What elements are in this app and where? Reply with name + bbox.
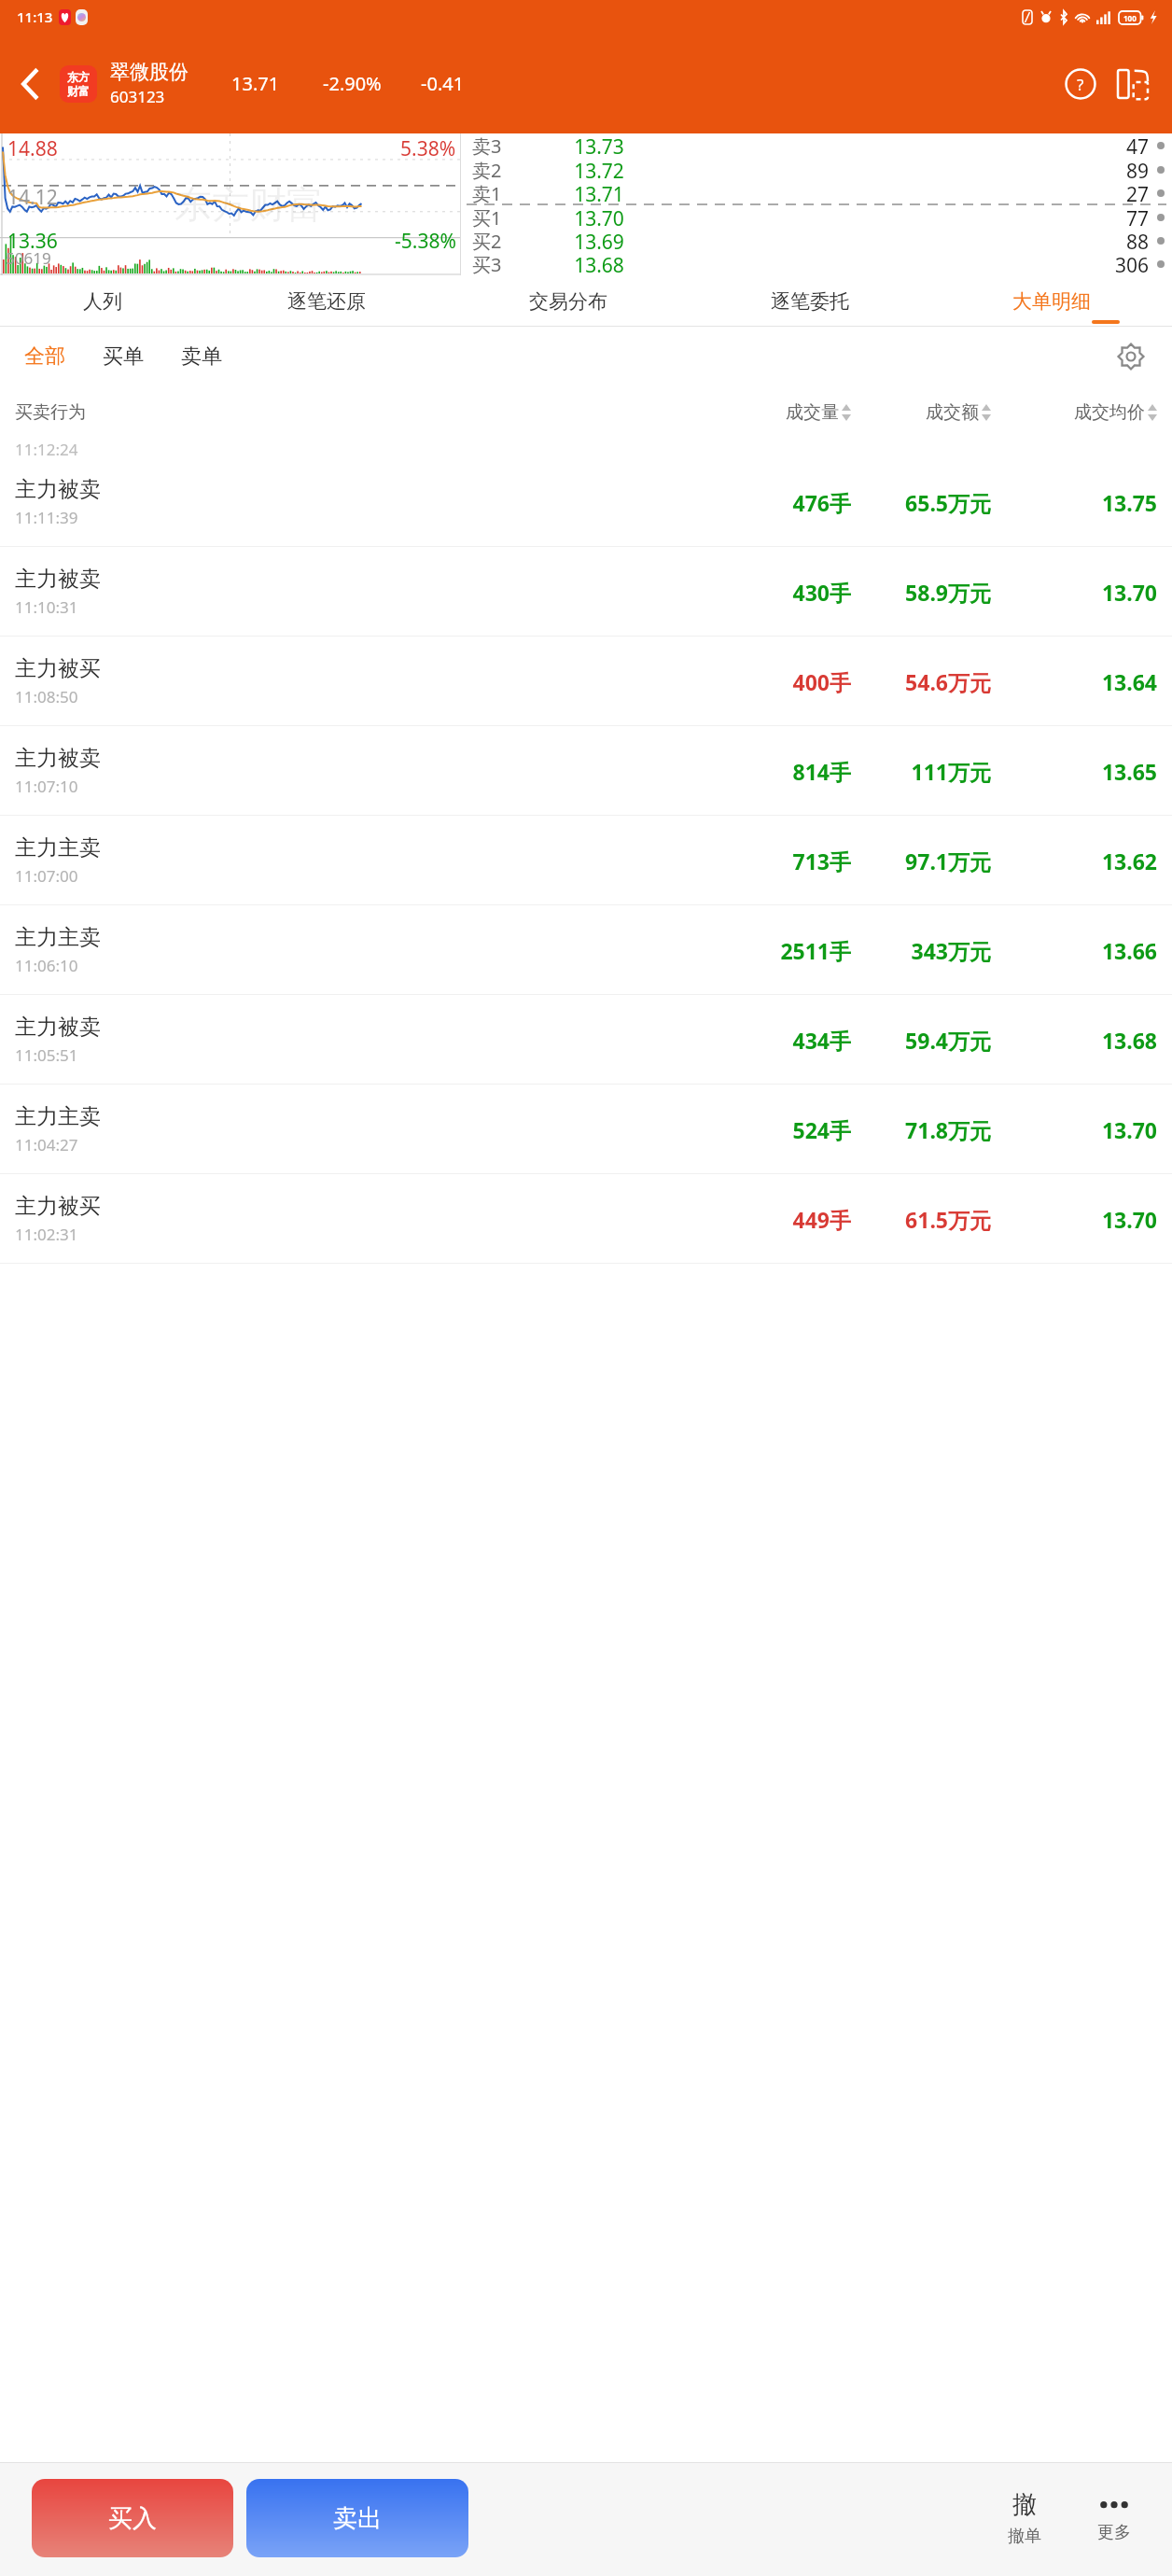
button[interactable]: 卖3 <box>461 133 1172 158</box>
staticText: 476手 <box>705 488 851 517</box>
staticText: 13.62 <box>991 847 1157 875</box>
staticText: 430手 <box>705 578 851 607</box>
button[interactable]: 交易分布 <box>447 275 689 327</box>
staticText: 卖单 <box>181 343 222 370</box>
staticText: 主力被卖 <box>15 566 101 593</box>
staticText: 814手 <box>705 757 851 786</box>
staticText: 13.64 <box>991 667 1157 696</box>
button[interactable]: 买1 <box>461 205 1172 229</box>
button[interactable]: 成交量 <box>705 401 851 424</box>
staticText: 13.36 <box>7 228 58 255</box>
staticText: 343万元 <box>851 936 991 965</box>
button[interactable]: 全部 <box>24 343 65 370</box>
staticText: 东方财富 <box>174 181 324 228</box>
staticText: 97.1万元 <box>851 847 991 875</box>
button[interactable]: 主力被买 <box>0 637 1172 726</box>
staticText: 11:05:51 <box>15 1044 78 1066</box>
button[interactable]: 卖1 <box>461 181 1172 204</box>
button[interactable]: 买2 <box>461 229 1172 252</box>
staticText: 13.70 <box>991 1205 1157 1234</box>
button[interactable]: Landscape <box>1107 58 1159 110</box>
button[interactable]: 买入 <box>32 2479 233 2557</box>
staticText: 5.38% <box>400 135 456 162</box>
button[interactable]: 买3 <box>461 252 1172 275</box>
staticText: 71.8万元 <box>851 1115 991 1144</box>
staticText: 11:07:10 <box>15 776 78 797</box>
staticText: 主力被卖 <box>15 745 101 772</box>
staticText: 13.68 <box>543 252 655 275</box>
button[interactable]: 成交额 <box>851 401 991 424</box>
staticText: 111万元 <box>851 757 991 786</box>
button[interactable]: 逐笔委托 <box>689 275 930 327</box>
staticText: 13.66 <box>991 936 1157 965</box>
staticText: 翠微股份 <box>110 60 188 84</box>
button[interactable]: 主力被卖 <box>0 995 1172 1085</box>
staticText: 11:04:27 <box>15 1134 78 1155</box>
staticText: 东方 <box>67 70 90 84</box>
staticText: 77 <box>1126 205 1150 229</box>
staticText: 主力主卖 <box>15 924 101 951</box>
button[interactable]: Help <box>1054 58 1107 110</box>
button[interactable]: 主力主卖 <box>0 905 1172 995</box>
staticText: 2511手 <box>705 936 851 965</box>
staticText: 13.69 <box>543 229 655 252</box>
button[interactable]: 主力被卖 <box>0 726 1172 816</box>
staticText: 11:13 <box>17 7 53 26</box>
button[interactable]: 主力主卖 <box>0 816 1172 905</box>
staticText: 撤单 <box>1008 2526 1041 2547</box>
staticText: 逐笔还原 <box>287 289 366 314</box>
staticText: 财富 <box>67 84 90 98</box>
button[interactable]: 逐笔还原 <box>205 275 447 327</box>
staticText: 主力主卖 <box>15 834 101 861</box>
staticText: 13.70 <box>991 578 1157 607</box>
staticText: 买3 <box>472 252 543 275</box>
staticText: 306 <box>1115 252 1150 275</box>
staticText: 713手 <box>705 847 851 875</box>
button[interactable]: 卖单 <box>181 343 222 370</box>
staticText: 全部 <box>24 343 65 370</box>
staticText: 11:11:39 <box>15 507 78 528</box>
staticText: 59.4万元 <box>851 1026 991 1055</box>
button[interactable]: 大单明细 <box>930 275 1172 327</box>
staticText: 11:07:00 <box>15 865 78 887</box>
staticText: 买1 <box>472 205 543 229</box>
staticText: 100 <box>1123 13 1137 23</box>
staticText: 14.12 <box>7 184 58 211</box>
staticText: 603123 <box>110 86 165 107</box>
staticText: 买单 <box>103 343 144 370</box>
button[interactable]: 主力被卖 <box>0 457 1172 547</box>
button[interactable]: 主力被卖 <box>0 547 1172 637</box>
staticText: 成交均价 <box>1074 401 1145 424</box>
button[interactable]: 撤 <box>980 2479 1069 2557</box>
button[interactable]: Settings <box>1109 334 1153 379</box>
button[interactable]: 主力被买 <box>0 1174 1172 1264</box>
staticText: 卖3 <box>472 133 543 158</box>
staticText: 卖出 <box>333 2503 382 2534</box>
button[interactable]: 主力主卖 <box>0 1085 1172 1174</box>
staticText: 88 <box>1126 229 1150 252</box>
staticText: 13.71 <box>543 181 655 204</box>
staticText: 主力被买 <box>15 655 101 682</box>
button[interactable]: 卖出 <box>246 2479 468 2557</box>
staticText: 61.5万元 <box>851 1205 991 1234</box>
staticText: -2.90% <box>323 71 382 96</box>
staticText: 13.75 <box>991 488 1157 517</box>
button[interactable]: 买单 <box>103 343 144 370</box>
button[interactable]: 成交均价 <box>991 401 1157 424</box>
staticText: 65.5万元 <box>851 488 991 517</box>
staticText: 成交额 <box>926 401 979 424</box>
staticText: 449手 <box>705 1205 851 1234</box>
staticText: 58.9万元 <box>851 578 991 607</box>
staticText: 11:02:31 <box>15 1224 78 1245</box>
button[interactable]: 更多 <box>1069 2479 1159 2557</box>
button[interactable]: 卖2 <box>461 158 1172 181</box>
button[interactable]: Back <box>0 34 60 133</box>
staticText: 50619 <box>6 247 51 269</box>
staticText: 27 <box>1126 181 1150 204</box>
staticText: 400手 <box>705 667 851 696</box>
button[interactable]: 人列 <box>0 275 205 327</box>
staticText: 13.73 <box>543 133 655 158</box>
staticText: 13.72 <box>543 158 655 181</box>
staticText: 主力被买 <box>15 1193 101 1220</box>
staticText: 大单明细 <box>1012 289 1091 314</box>
